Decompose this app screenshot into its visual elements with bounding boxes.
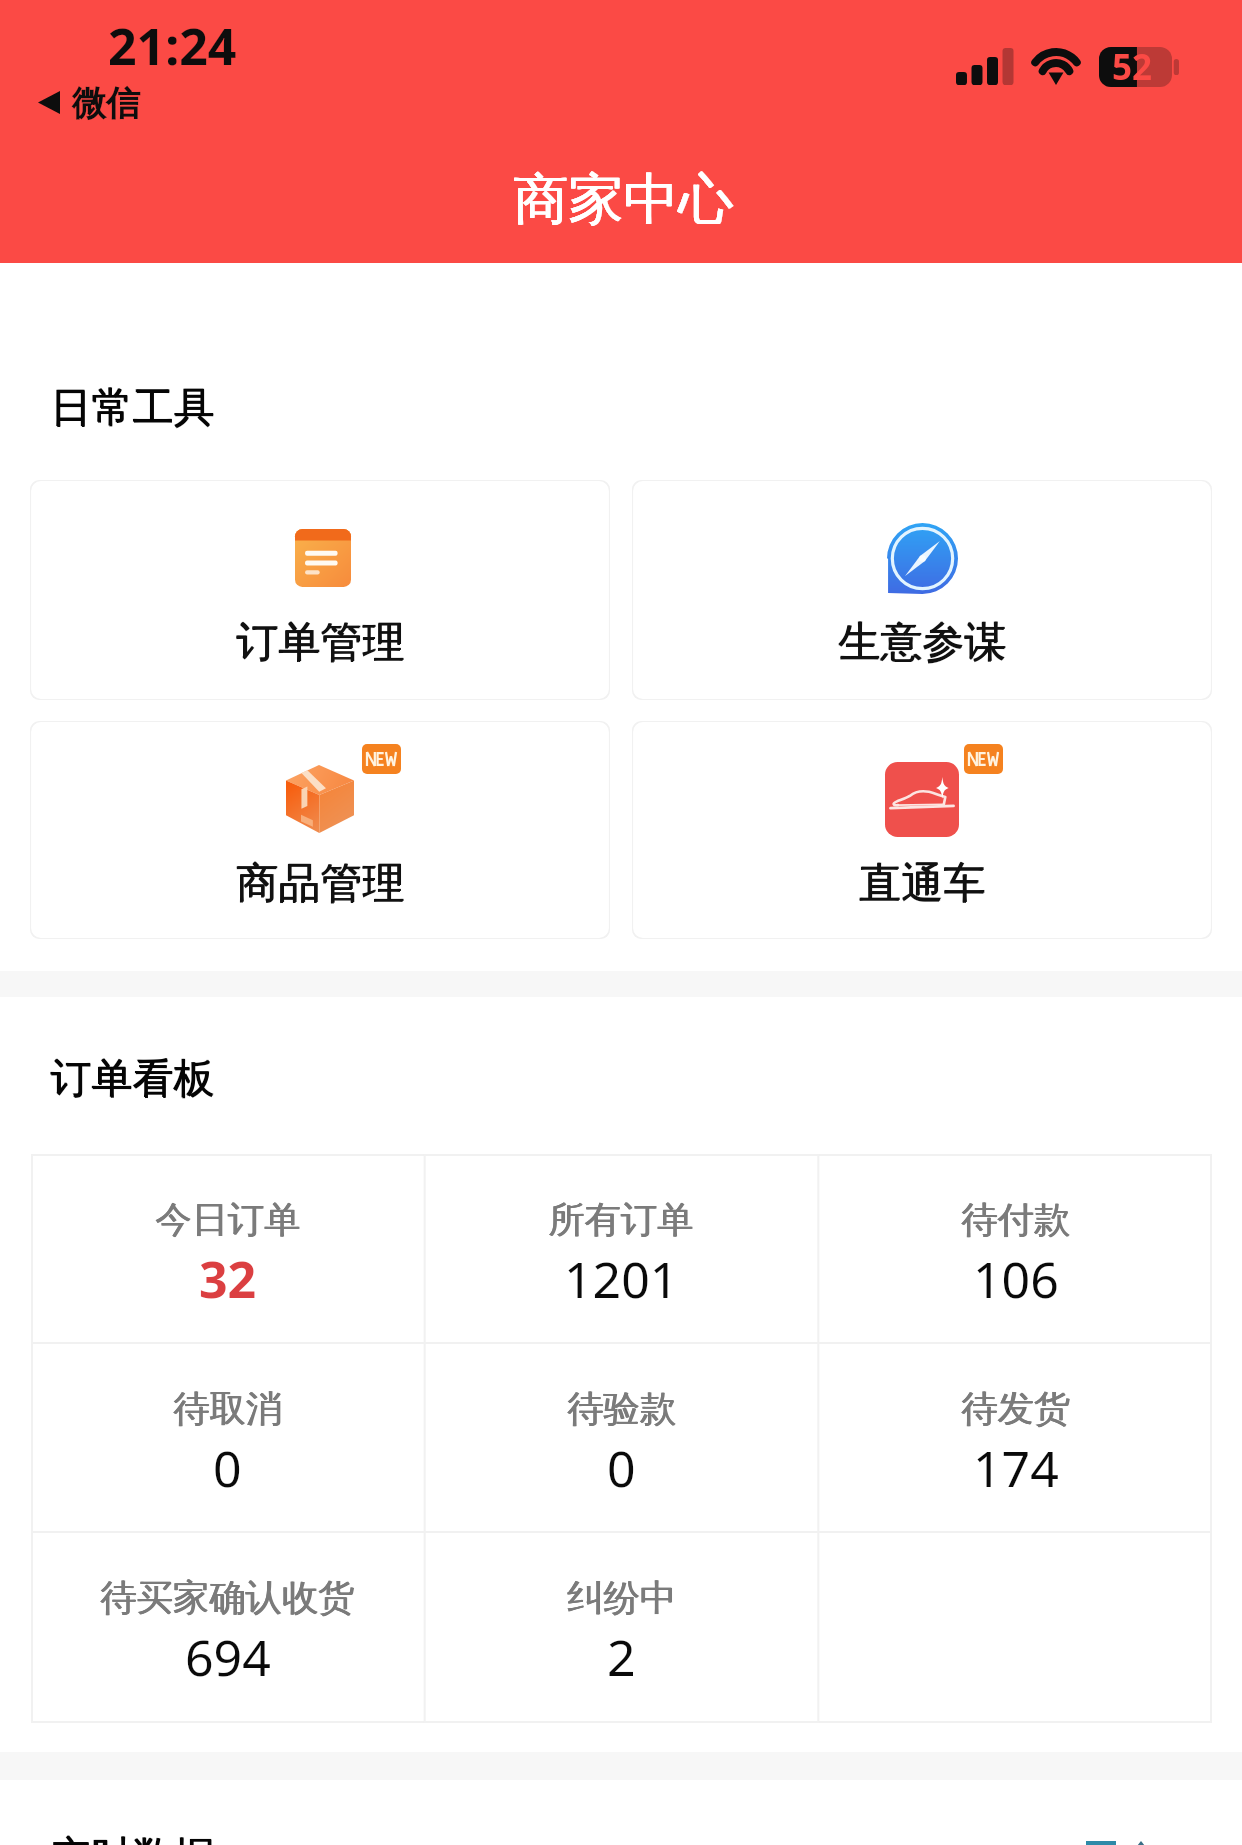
- staticText: 待付款: [962, 1197, 1071, 1243]
- staticText: 订单看板: [51, 1054, 215, 1106]
- staticText: 0: [213, 1434, 242, 1502]
- staticText: 直通车: [859, 858, 985, 911]
- staticText: 待发货: [961, 1386, 1070, 1432]
- staticText: 纠纷中: [568, 1575, 677, 1621]
- staticText: 生意参谋: [839, 616, 1007, 669]
- staticText: 商品管理: [237, 857, 405, 910]
- staticText: 微信: [72, 82, 140, 125]
- button[interactable]: 所有订单: [424, 1154, 818, 1343]
- staticText: 待取消: [173, 1386, 282, 1432]
- staticText: 待取消: [174, 1386, 283, 1432]
- staticText: 商品管理: [236, 857, 404, 910]
- staticText: 106: [973, 1245, 1059, 1313]
- staticText: 待发货: [962, 1386, 1071, 1432]
- staticText: 直通车: [859, 857, 985, 910]
- staticText: 所有订单: [548, 1197, 694, 1243]
- button[interactable]: 待付款: [818, 1154, 1212, 1343]
- button[interactable]: 纠纷中: [424, 1532, 818, 1722]
- staticText: 待付款: [961, 1197, 1070, 1243]
- staticText: 实时数据: [50, 1831, 214, 1845]
- button[interactable]: 订单管理: [30, 480, 610, 700]
- staticText: 日常工具: [51, 383, 215, 435]
- staticText: 694: [185, 1623, 271, 1691]
- staticText: 实时数据: [51, 1832, 215, 1845]
- staticText: 待买家确认收货: [101, 1575, 356, 1621]
- button[interactable]: 待验款: [424, 1343, 818, 1532]
- staticText: 0: [607, 1434, 636, 1502]
- staticText: 今日订单: [156, 1197, 302, 1243]
- staticText: 纠纷中: [567, 1575, 676, 1621]
- staticText: 待发货: [961, 1386, 1070, 1432]
- button[interactable]: 待取消: [31, 1343, 424, 1532]
- staticText: 待验款: [568, 1386, 677, 1432]
- staticText: 待买家确认收货: [100, 1575, 355, 1621]
- staticText: 待付款: [961, 1197, 1070, 1243]
- button[interactable]: 待发货: [818, 1343, 1212, 1532]
- button[interactable]: 生意参谋: [632, 480, 1212, 700]
- staticText: 商家中心: [513, 165, 733, 234]
- staticText: 待验款: [567, 1386, 676, 1432]
- button[interactable]: 待买家确认收货: [31, 1532, 424, 1722]
- staticText: 订单管理: [236, 617, 404, 670]
- staticText: 生意参谋: [838, 616, 1006, 669]
- staticText: 订单管理: [237, 616, 405, 669]
- staticText: 2: [607, 1623, 636, 1691]
- staticText: 商家中心: [513, 165, 733, 234]
- button[interactable]: 商品管理: [30, 721, 610, 939]
- button[interactable]: 直通车: [632, 721, 1212, 939]
- staticText: 商家中心: [514, 165, 734, 234]
- staticText: 直通车: [860, 857, 986, 910]
- staticText: 待验款: [567, 1386, 676, 1432]
- staticText: 1201: [564, 1245, 679, 1313]
- button[interactable]: 今日订单: [31, 1154, 424, 1343]
- staticText: 所有订单: [548, 1197, 694, 1243]
- staticText: 实时数据: [51, 1831, 215, 1845]
- staticText: 纠纷中: [567, 1575, 676, 1621]
- staticText: 所有订单: [549, 1197, 695, 1243]
- staticText: 订单看板: [51, 1053, 215, 1105]
- button[interactable]: Back to WeChat: [34, 80, 144, 124]
- staticText: 52: [1112, 43, 1153, 83]
- staticText: 生意参谋: [838, 617, 1006, 670]
- staticText: 21:24: [108, 12, 237, 80]
- staticText: 订单管理: [236, 616, 404, 669]
- staticText: 174: [973, 1434, 1059, 1502]
- staticText: 今日订单: [155, 1197, 301, 1243]
- staticText: 今日订单: [155, 1197, 301, 1243]
- staticText: 商品管理: [236, 858, 404, 911]
- staticText: 32: [199, 1245, 257, 1313]
- staticText: 待取消: [173, 1386, 282, 1432]
- staticText: 订单看板: [50, 1053, 214, 1105]
- staticText: 日常工具: [51, 382, 215, 434]
- staticText: 日常工具: [50, 382, 214, 434]
- staticText: 待买家确认收货: [100, 1575, 355, 1621]
